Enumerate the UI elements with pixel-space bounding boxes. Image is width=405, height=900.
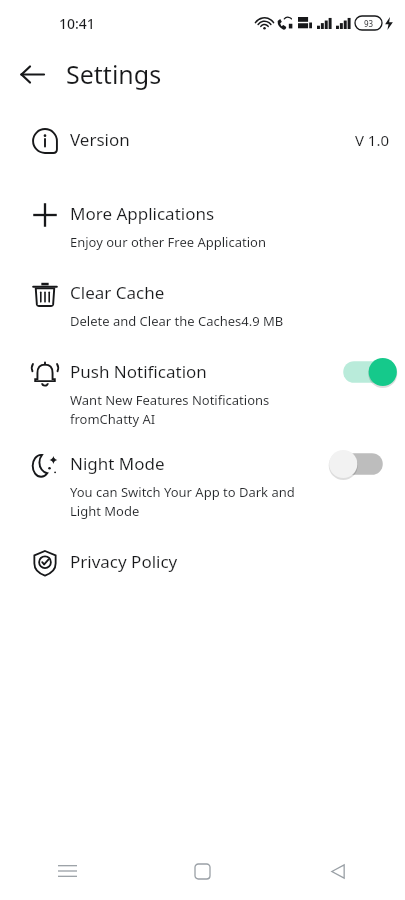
staticText: More Applications (70, 202, 215, 225)
button[interactable]: Toggle off (337, 449, 389, 479)
staticText: Push Notification (70, 360, 207, 383)
staticText: Settings (66, 57, 162, 91)
button[interactable]: Privacy Policy (0, 546, 405, 580)
staticText: Clear Cache (70, 281, 165, 304)
staticText: Night Mode (70, 452, 165, 475)
staticText: Version (70, 128, 130, 151)
button[interactable]: Clear Cache (0, 277, 405, 330)
staticText: Want New Features Notifications fromChat… (70, 391, 329, 428)
staticText: Privacy Policy (70, 550, 178, 573)
staticText: Enjoy our other Free Application (70, 233, 266, 251)
button[interactable]: Home (135, 842, 270, 900)
button[interactable]: Recent apps (0, 842, 135, 900)
staticText: You can Switch Your App to Dark and Ligh… (70, 483, 329, 520)
staticText: Delete and Clear the Caches4.9 MB (70, 312, 284, 330)
button[interactable]: Back (270, 842, 405, 900)
button[interactable]: Push Notification (0, 356, 405, 428)
staticText: V 1.0 (354, 130, 389, 150)
button[interactable]: Night Mode (0, 448, 405, 520)
button[interactable]: Back (10, 52, 54, 96)
button[interactable]: Toggle on (337, 357, 389, 387)
button[interactable]: More Applications (0, 198, 405, 251)
button[interactable]: Version (0, 124, 405, 158)
staticText: 93 (364, 18, 374, 29)
staticText: 10:41 (59, 14, 95, 33)
